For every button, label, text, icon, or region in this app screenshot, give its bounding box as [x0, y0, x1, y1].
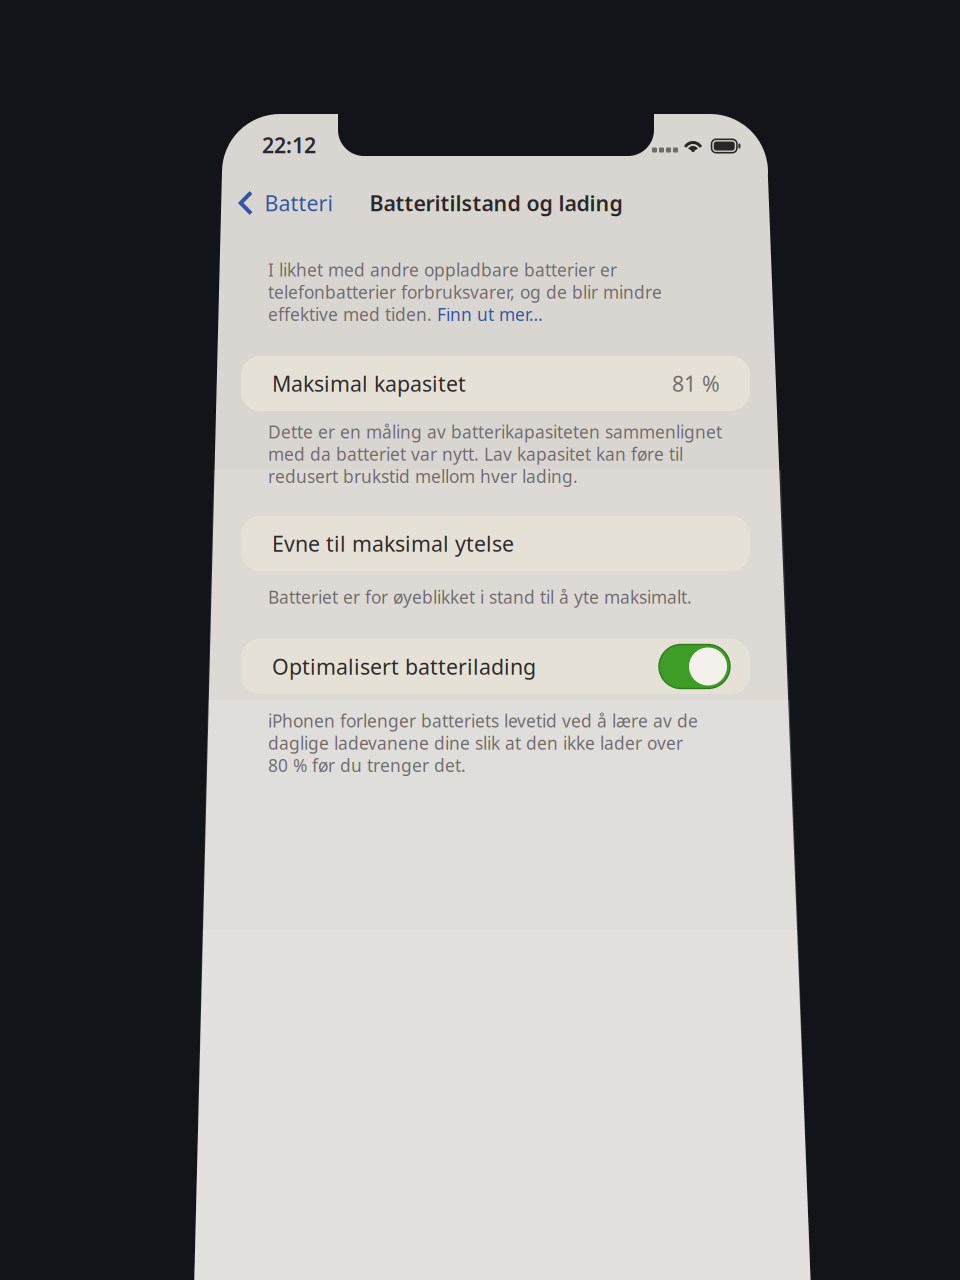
staticText: I likhet med andre oppladbare batterier …: [268, 258, 617, 281]
staticText: Evne til maksimal ytelse: [272, 529, 514, 558]
staticText: 80 % før du trenger det.: [268, 754, 466, 777]
staticText: Dette er en måling av batterikapasiteten…: [268, 420, 722, 443]
staticText: Optimalisert batterilading: [272, 652, 536, 681]
staticText: Batteritilstand og lading: [369, 189, 622, 217]
staticText: Batteri: [264, 189, 333, 217]
button[interactable]: Finn ut mer…: [437, 303, 543, 326]
staticText: 81 %: [672, 369, 720, 398]
staticText: Maksimal kapasitet: [272, 369, 466, 398]
staticText: med da batteriet var nytt. Lav kapasitet…: [268, 442, 683, 465]
button[interactable]: Optimalisert batterilading: [659, 644, 730, 688]
staticText: Batteriet er for øyeblikket i stand til …: [268, 585, 692, 608]
button[interactable]: Maksimal kapasitet: [241, 356, 750, 411]
staticText: Finn ut mer…: [437, 303, 543, 326]
staticText: telefonbatterier forbruksvarer, og de bl…: [268, 280, 662, 303]
button[interactable]: Evne til maksimal ytelse: [241, 516, 750, 571]
staticText: daglige ladevanene dine slik at den ikke…: [268, 731, 683, 754]
button[interactable]: Batteri: [224, 179, 345, 227]
staticText: 22:12: [262, 131, 316, 159]
staticText: iPhonen forlenger batteriets levetid ved…: [268, 709, 698, 732]
staticText: redusert brukstid mellom hver lading.: [268, 465, 578, 488]
staticText: effektive med tiden.: [268, 303, 437, 326]
